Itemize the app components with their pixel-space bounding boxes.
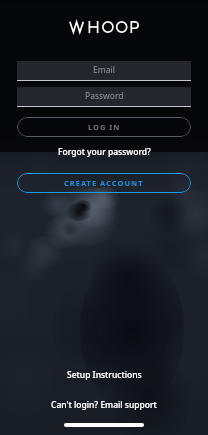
staticText: Password bbox=[85, 90, 124, 102]
staticText: Email bbox=[93, 64, 115, 76]
button[interactable]: Email bbox=[17, 61, 191, 81]
staticText: Can't login? Email support bbox=[51, 399, 157, 411]
button[interactable]: Password bbox=[17, 87, 191, 107]
button[interactable]: Setup Instructions bbox=[59, 366, 150, 384]
button[interactable]: Can't login? Email support bbox=[43, 396, 165, 414]
button[interactable]: Forgot your password? bbox=[50, 143, 159, 161]
button[interactable]: CREATE ACCOUNT bbox=[17, 173, 191, 193]
staticText: Forgot your password? bbox=[58, 146, 151, 158]
staticText: LOG IN bbox=[88, 122, 121, 132]
staticText: Setup Instructions bbox=[67, 369, 142, 381]
button[interactable]: LOG IN bbox=[17, 117, 191, 137]
staticText: CREATE ACCOUNT bbox=[64, 178, 144, 188]
